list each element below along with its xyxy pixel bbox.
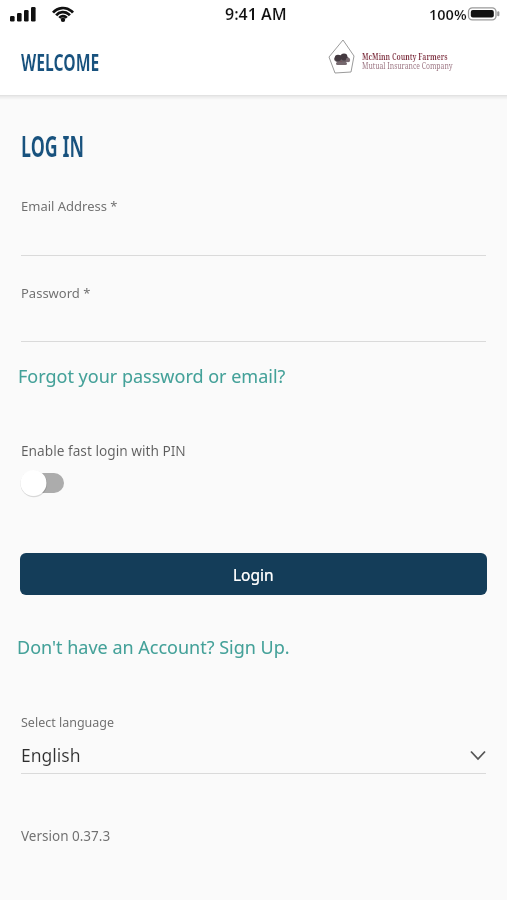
staticText: English (21, 743, 81, 767)
staticText: Don't have an Account? Sign Up. (17, 635, 290, 660)
staticText: Password * (21, 284, 91, 302)
staticText: Forgot your password or email? (18, 364, 286, 389)
staticText: Enable fast login with PIN (21, 441, 186, 460)
staticText: Mutual Insurance Company (362, 59, 453, 71)
staticText: LOG IN (21, 127, 84, 165)
staticText: Login (233, 564, 274, 585)
staticText: McMinn County Farmers (362, 50, 448, 63)
staticText: WELCOME (21, 45, 100, 78)
staticText: Email Address * (21, 197, 118, 215)
staticText: 9:41 AM (225, 3, 287, 25)
staticText: 100% (429, 4, 467, 24)
staticText: Select language (21, 714, 115, 731)
staticText: Version 0.37.3 (21, 827, 111, 845)
